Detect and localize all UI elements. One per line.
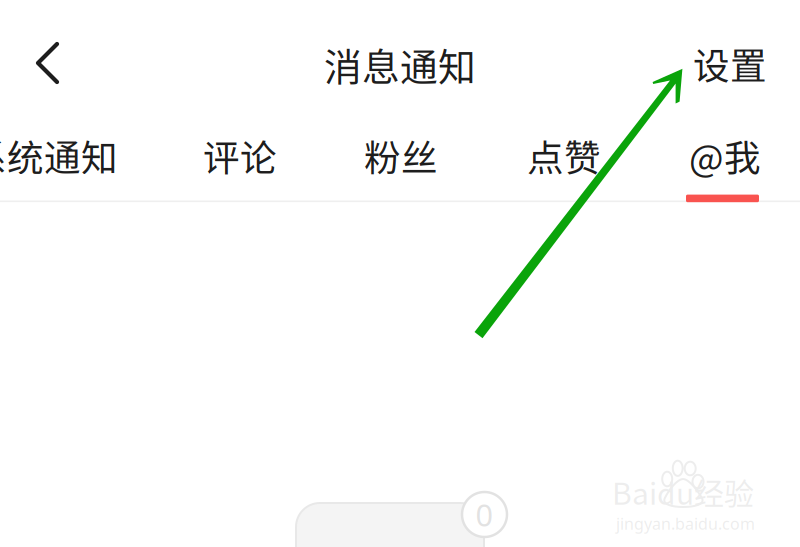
button[interactable]: 系统通知 xyxy=(0,96,119,200)
button[interactable]: 设置 xyxy=(670,0,800,96)
staticText: jingyan.baidu.com xyxy=(616,513,755,534)
staticText: 评论 xyxy=(203,129,277,182)
button[interactable]: Back xyxy=(0,0,80,96)
staticText: 设置 xyxy=(693,37,767,90)
button[interactable]: @我 xyxy=(665,96,785,200)
staticText: 消息通知 xyxy=(324,37,476,92)
button[interactable]: 评论 xyxy=(180,96,300,200)
staticText: Baidu经验 xyxy=(612,470,754,513)
staticText: 点赞 xyxy=(527,129,601,182)
staticText: 粉丝 xyxy=(364,129,438,182)
button[interactable]: 粉丝 xyxy=(341,96,461,200)
button[interactable]: 点赞 xyxy=(504,96,624,200)
staticText: 系统通知 xyxy=(0,129,118,182)
staticText: @我 xyxy=(689,129,761,182)
staticText: 0 xyxy=(475,494,493,535)
